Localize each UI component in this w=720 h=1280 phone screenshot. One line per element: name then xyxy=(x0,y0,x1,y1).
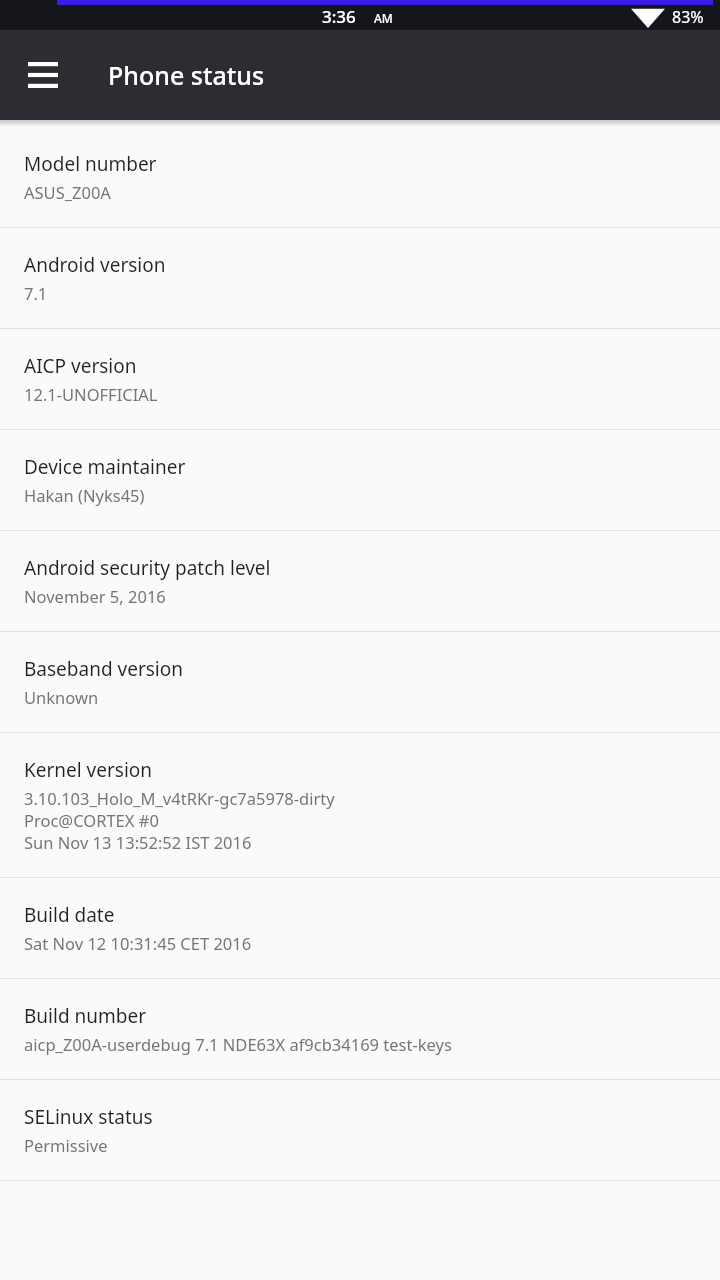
staticText: Unknown xyxy=(24,686,99,708)
staticText: Model number xyxy=(24,151,157,177)
staticText: Sun Nov 13 13:52:52 IST 2016 xyxy=(24,831,252,853)
staticText: Proc@CORTEX #0 xyxy=(24,809,159,831)
button[interactable]: Build date xyxy=(0,878,720,979)
staticText: November 5, 2016 xyxy=(24,585,166,607)
staticText: 7.1 xyxy=(24,282,48,304)
button[interactable]: Device maintainer xyxy=(0,430,720,531)
staticText: Device maintainer xyxy=(24,454,186,480)
staticText: Hakan (Nyks45) xyxy=(24,484,145,506)
staticText: ASUS_Z00A xyxy=(24,181,111,203)
staticText: 12.1-UNOFFICIAL xyxy=(24,383,158,405)
staticText: Permissive xyxy=(24,1134,108,1156)
button[interactable]: Android security patch level xyxy=(0,531,720,632)
staticText: 3:36 xyxy=(322,5,356,28)
staticText: Android security patch level xyxy=(24,555,271,581)
staticText: Baseband version xyxy=(24,656,183,682)
staticText: Android version xyxy=(24,252,166,278)
staticText: AM xyxy=(374,10,393,26)
button[interactable]: SELinux status xyxy=(0,1080,720,1181)
button[interactable]: Baseband version xyxy=(0,632,720,733)
staticText: AICP version xyxy=(24,353,137,379)
staticText: aicp_Z00A-userdebug 7.1 NDE63X af9cb3416… xyxy=(24,1033,452,1055)
button[interactable]: Kernel version xyxy=(0,733,720,878)
staticText: 3.10.103_Holo_M_v4tRKr-gc7a5978-dirty xyxy=(24,787,335,809)
staticText: Phone status xyxy=(108,58,265,92)
staticText: Sat Nov 12 10:31:45 CET 2016 xyxy=(24,932,252,954)
button[interactable]: AICP version xyxy=(0,329,720,430)
staticText: SELinux status xyxy=(24,1104,153,1130)
button[interactable]: Build number xyxy=(0,979,720,1080)
button[interactable]: Model number xyxy=(0,127,720,228)
button[interactable]: Open navigation menu xyxy=(14,46,72,104)
staticText: Kernel version xyxy=(24,757,153,783)
staticText: 83% xyxy=(672,6,704,28)
staticText: Build number xyxy=(24,1003,147,1029)
staticText: Build date xyxy=(24,902,115,928)
button[interactable]: Android version xyxy=(0,228,720,329)
